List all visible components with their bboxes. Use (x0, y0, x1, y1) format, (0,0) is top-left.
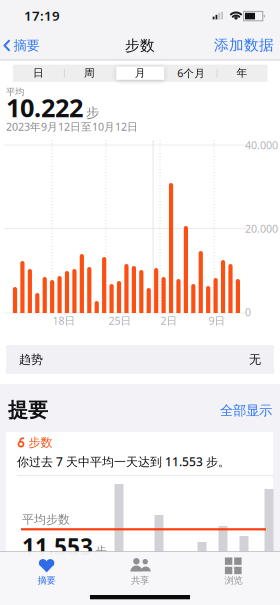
staticText: 平均步数 (22, 512, 70, 527)
button[interactable]: 全部显示 (220, 402, 272, 419)
button[interactable]: 添加数据 (214, 36, 274, 54)
button[interactable]: 周 (64, 64, 114, 81)
staticText: 月 (135, 66, 146, 79)
staticText: 0 (245, 305, 251, 319)
staticText: 2日 (160, 313, 177, 328)
staticText: 年 (237, 66, 248, 79)
button[interactable]: 步数 (6, 432, 273, 605)
button[interactable]: 摘要 (3, 37, 39, 54)
button[interactable]: 日 (13, 64, 63, 81)
staticText: 日 (33, 66, 44, 79)
staticText: 步数 (125, 36, 155, 54)
staticText: 20.000 (245, 221, 278, 236)
staticText: 步 (86, 105, 99, 121)
button[interactable]: 年 (217, 64, 267, 81)
button[interactable]: 浏览 (187, 552, 280, 592)
staticText: 11.553 (22, 531, 93, 561)
staticText: 摘要 (13, 37, 39, 54)
staticText: 9日 (208, 313, 225, 328)
staticText: 全部显示 (220, 402, 272, 419)
staticText: 10.222 (6, 91, 83, 124)
staticText: 周 (84, 66, 95, 79)
button[interactable]: 摘要 (0, 552, 93, 592)
button[interactable]: 共享 (93, 552, 186, 592)
staticText: 17:19 (24, 7, 60, 24)
staticText: 共享 (131, 575, 149, 586)
staticText: 无 (249, 352, 261, 367)
staticText: 6个月 (177, 66, 205, 80)
button[interactable]: 月 (115, 64, 165, 81)
staticText: 平均 (6, 86, 24, 98)
staticText: 18日 (52, 313, 75, 328)
staticText: 添加数据 (214, 36, 274, 54)
staticText: 2023年9月12日至10月12日 (6, 119, 138, 134)
staticText: 浏览 (224, 575, 242, 586)
staticText: 趋势 (19, 352, 43, 367)
staticText: 步 (95, 544, 107, 559)
staticText: 40.000 (245, 138, 278, 152)
staticText: 摘要 (38, 575, 56, 586)
staticText: 25日 (108, 313, 131, 328)
staticText: 提要 (8, 398, 48, 422)
button[interactable]: 趋势 (6, 345, 274, 374)
staticText: 步数 (28, 435, 52, 450)
button[interactable]: 6个月 (166, 64, 216, 81)
staticText: 你过去 7 天中平均一天达到 11.553 步。 (17, 453, 230, 469)
